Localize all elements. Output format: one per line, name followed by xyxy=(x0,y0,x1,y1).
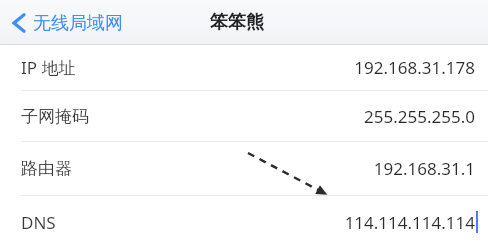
staticText: 无线局域网 xyxy=(33,12,123,35)
staticText: 192.168.31.1 xyxy=(373,157,475,180)
staticText: 子网掩码 xyxy=(21,106,89,127)
button[interactable]: DNS xyxy=(0,196,488,248)
staticText: 192.168.31.178 xyxy=(354,56,475,79)
button[interactable]: 子网掩码 xyxy=(0,91,488,141)
staticText: IP 地址 xyxy=(21,56,76,79)
staticText: 路由器 xyxy=(21,158,72,179)
staticText: DNS xyxy=(21,211,56,234)
staticText: 114.114.114.114 xyxy=(344,211,475,234)
button[interactable]: 路由器 xyxy=(0,142,488,195)
button[interactable]: IP 地址 xyxy=(0,45,488,90)
button[interactable]: Back to 无线局域网 xyxy=(0,7,131,39)
staticText: 255.255.255.0 xyxy=(364,105,475,128)
staticText: 笨笨熊 xyxy=(210,11,264,34)
